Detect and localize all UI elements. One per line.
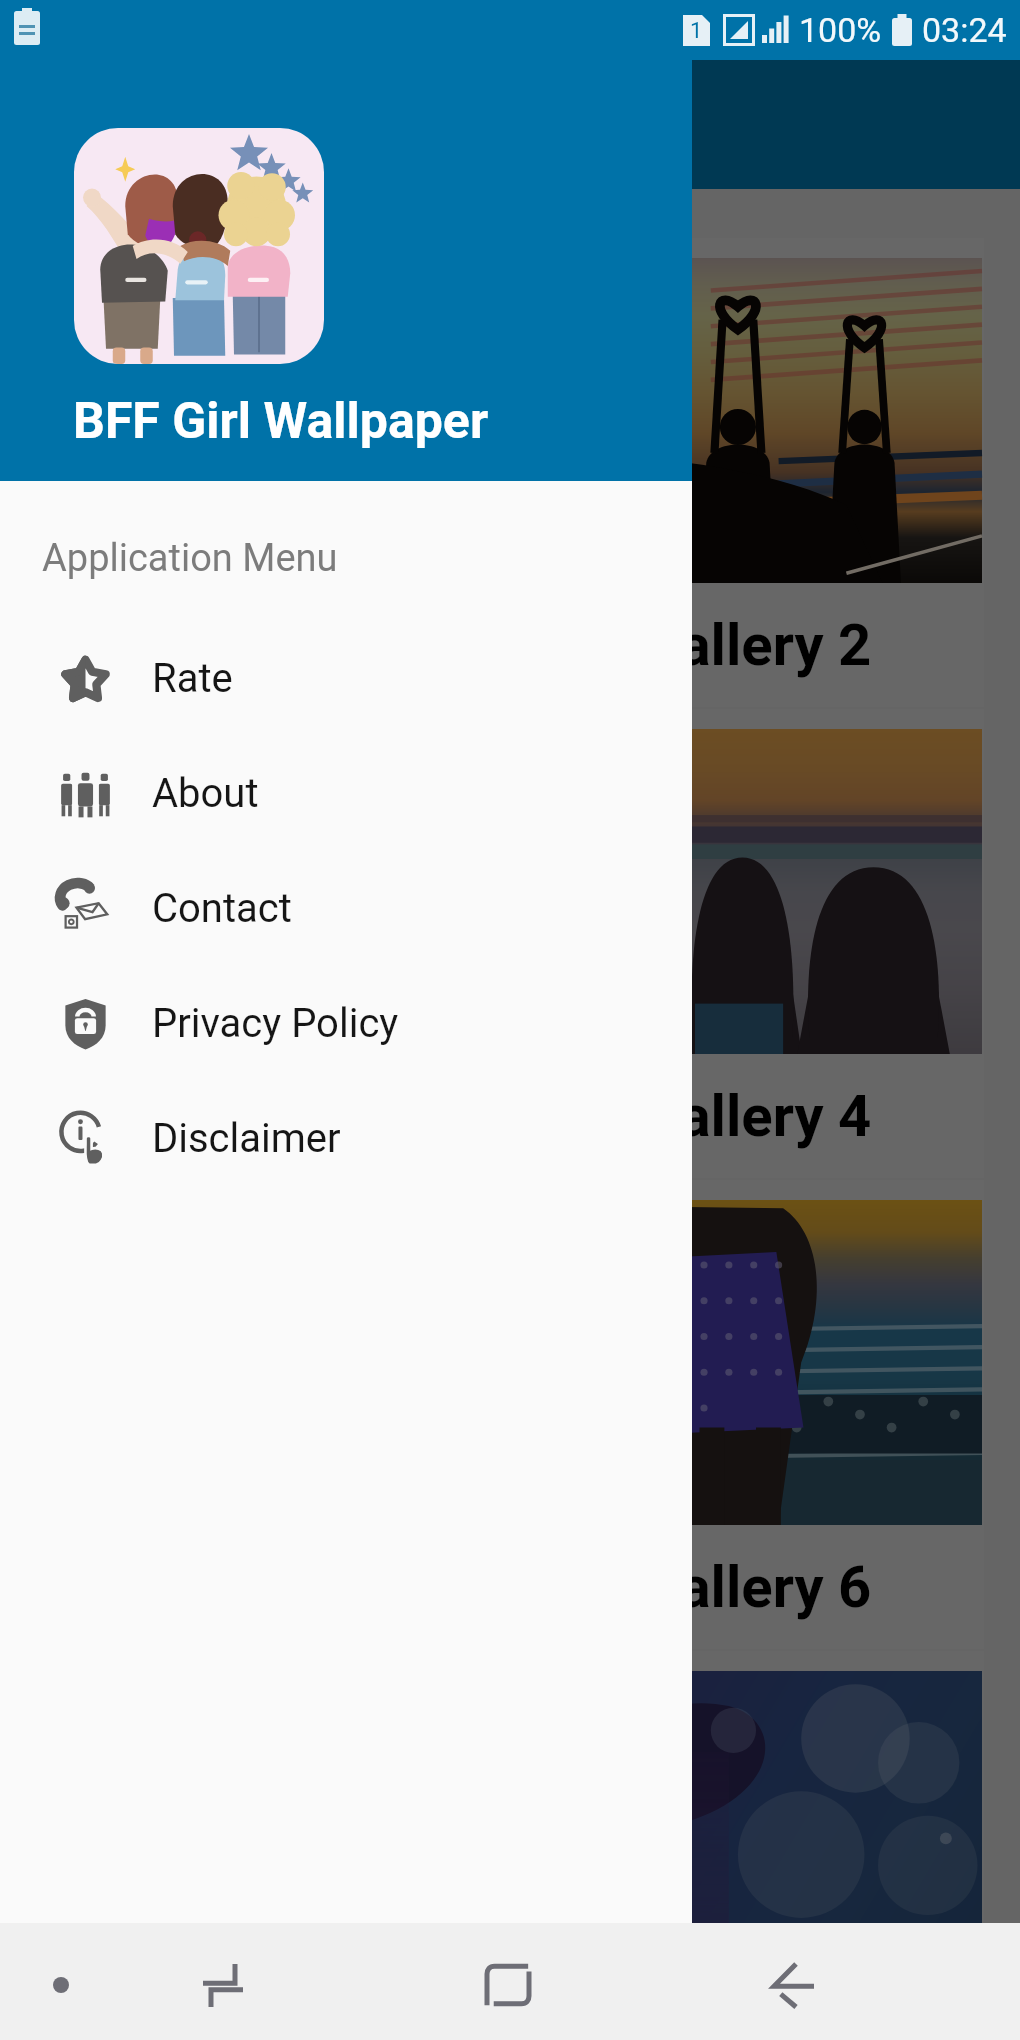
staticText: Gallery 3 bbox=[148, 1082, 380, 1150]
staticText: Gallery 1 bbox=[148, 611, 380, 679]
staticText: Gallery 6 bbox=[640, 1553, 872, 1621]
button[interactable]: Disclaimer bbox=[0, 1081, 692, 1196]
button[interactable]: Rate bbox=[0, 621, 692, 736]
button[interactable]: Recent apps bbox=[193, 1955, 253, 2015]
button[interactable]: About bbox=[0, 736, 692, 851]
button[interactable]: Home bbox=[478, 1955, 538, 2015]
button[interactable]: Gallery 4 bbox=[528, 709, 984, 1178]
staticText: BFF Girl Wallpaper bbox=[175, 97, 568, 153]
staticText: Rate bbox=[152, 655, 233, 702]
button[interactable]: Gallery 3 bbox=[36, 709, 492, 1178]
staticText: Disclaimer bbox=[152, 1115, 341, 1162]
staticText: BFF Girl Wallpaper bbox=[73, 392, 489, 451]
staticText: 03:24 bbox=[922, 10, 1007, 50]
staticText: 1 bbox=[690, 18, 703, 44]
button[interactable]: Back bbox=[764, 1955, 824, 2015]
staticText: Privacy Policy bbox=[152, 1000, 399, 1047]
button[interactable]: Menu indicator bbox=[31, 1955, 91, 2015]
staticText: Gallery 4 bbox=[640, 1082, 872, 1150]
staticText: Application Menu bbox=[42, 536, 338, 581]
staticText: About bbox=[152, 770, 259, 817]
staticText: Contact bbox=[152, 885, 292, 932]
button[interactable]: Contact bbox=[0, 851, 692, 966]
staticText: 100% bbox=[799, 10, 882, 50]
button[interactable]: Gallery 1 bbox=[36, 238, 492, 707]
button[interactable]: Gallery 2 bbox=[528, 238, 984, 707]
button[interactable]: Gallery 8 bbox=[528, 1651, 984, 1921]
button[interactable]: Privacy Policy bbox=[0, 966, 692, 1081]
staticText: Gallery 2 bbox=[640, 611, 872, 679]
button[interactable]: Gallery 6 bbox=[528, 1180, 984, 1649]
